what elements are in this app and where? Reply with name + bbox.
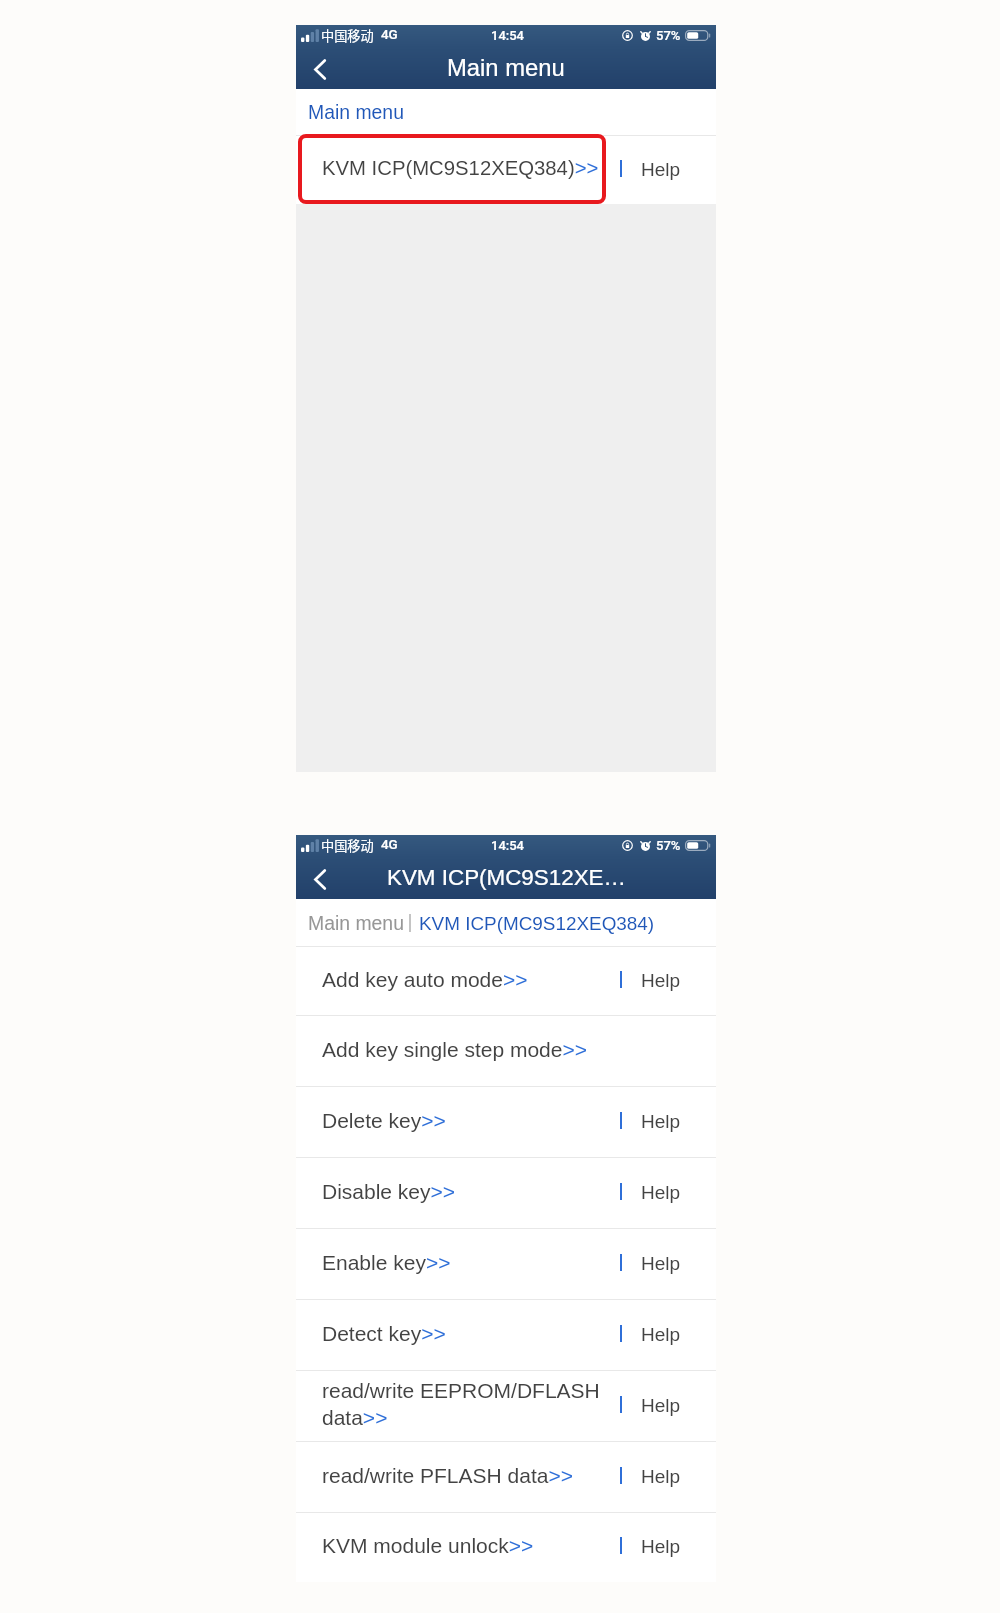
staticText: Help bbox=[641, 1324, 681, 1345]
button[interactable]: Help bbox=[610, 1371, 716, 1441]
button[interactable]: Back bbox=[296, 50, 343, 88]
staticText: KVM module unlock>> bbox=[322, 1534, 534, 1557]
staticText: KVM ICP(MC9S12XEQ384)>> bbox=[322, 157, 599, 180]
other: Rotation lock bbox=[622, 30, 633, 41]
button[interactable]: Help bbox=[610, 1513, 716, 1582]
staticText: Help bbox=[641, 1182, 681, 1203]
button[interactable]: KVM ICP(MC9S12XEQ384) bbox=[419, 913, 655, 934]
button[interactable]: KVM module unlock>> bbox=[296, 1513, 716, 1582]
button[interactable]: Add key auto mode>> bbox=[296, 947, 716, 1015]
staticText: 4G bbox=[381, 837, 398, 853]
other: Rotation lock bbox=[622, 840, 633, 851]
button[interactable]: Delete key>> bbox=[296, 1087, 716, 1157]
button[interactable]: Disable key>> bbox=[296, 1158, 716, 1228]
staticText: Help bbox=[641, 1253, 681, 1274]
button[interactable]: Main menu bbox=[308, 912, 404, 934]
other: Alarm bbox=[640, 29, 651, 41]
button[interactable]: Add key single step mode>> bbox=[296, 1016, 716, 1086]
staticText: Detect key>> bbox=[322, 1322, 446, 1345]
staticText: 57% bbox=[656, 28, 681, 43]
staticText: Disable key>> bbox=[322, 1180, 456, 1203]
staticText: Help bbox=[641, 1111, 681, 1132]
button[interactable]: Help bbox=[610, 1442, 716, 1512]
button[interactable]: KVM ICP(MC9S12XEQ384)>> bbox=[296, 136, 716, 204]
button[interactable]: Help bbox=[610, 1300, 716, 1370]
staticText: Enable key>> bbox=[322, 1251, 451, 1274]
button[interactable]: Help bbox=[610, 947, 716, 1015]
button[interactable]: Detect key>> bbox=[296, 1300, 716, 1370]
staticText: KVM ICP(MC9S12XE… bbox=[387, 865, 626, 890]
staticText: Main menu bbox=[447, 54, 565, 81]
staticText: 14:54 bbox=[491, 838, 525, 853]
staticText: Help bbox=[641, 1536, 681, 1557]
staticText: 中国移动 bbox=[321, 836, 374, 855]
staticText: Delete key>> bbox=[322, 1109, 446, 1132]
staticText: Help bbox=[641, 159, 681, 180]
staticText: 4G bbox=[381, 27, 398, 43]
other: Alarm bbox=[640, 839, 651, 851]
staticText: 中国移动 bbox=[321, 26, 374, 45]
staticText: 14:54 bbox=[491, 28, 525, 43]
button[interactable]: Help bbox=[610, 136, 716, 204]
staticText: Add key auto mode>> bbox=[322, 968, 528, 991]
staticText: Help bbox=[641, 1395, 681, 1416]
staticText: read/write EEPROM/DFLASH data>> bbox=[322, 1379, 622, 1429]
staticText: Help bbox=[641, 1466, 681, 1487]
staticText: Add key single step mode>> bbox=[322, 1038, 588, 1061]
button[interactable]: Main menu bbox=[308, 101, 404, 123]
button[interactable]: read/write PFLASH data>> bbox=[296, 1442, 716, 1512]
button[interactable]: read/write EEPROM/DFLASH data>> bbox=[296, 1371, 716, 1441]
button[interactable]: Back bbox=[296, 860, 343, 898]
staticText: read/write PFLASH data>> bbox=[322, 1464, 573, 1487]
button[interactable]: Help bbox=[610, 1087, 716, 1157]
button[interactable]: Help bbox=[610, 1158, 716, 1228]
button[interactable]: Help bbox=[610, 1229, 716, 1299]
button[interactable]: Enable key>> bbox=[296, 1229, 716, 1299]
staticText: 57% bbox=[656, 838, 681, 853]
staticText: Help bbox=[641, 970, 681, 991]
